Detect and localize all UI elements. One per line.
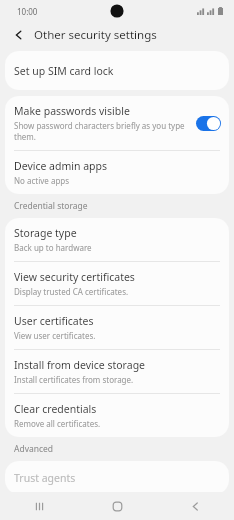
staticText: Set up SIM card lock: [14, 64, 114, 78]
button[interactable]: Make passwords visible: [5, 96, 229, 150]
button[interactable]: Make passwords visible toggle: [196, 116, 221, 131]
button[interactable]: Storage type: [5, 218, 229, 261]
staticText: Install from device storage: [14, 358, 146, 372]
staticText: Credential storage: [14, 200, 88, 212]
staticText: Storage type: [14, 226, 77, 240]
staticText: Show password characters briefly as you …: [14, 120, 190, 142]
staticText: Remove all certificates.: [14, 418, 101, 429]
button[interactable]: Device admin apps: [5, 151, 229, 194]
staticText: Make passwords visible: [14, 104, 130, 118]
staticText: Trust agents: [14, 471, 76, 485]
button[interactable]: View security certificates: [5, 262, 229, 305]
button[interactable]: User certificates: [5, 306, 229, 349]
staticText: Clear credentials: [14, 402, 97, 416]
staticText: Advanced: [14, 443, 54, 455]
staticText: Other security settings: [34, 27, 157, 43]
staticText: View security certificates: [14, 270, 135, 284]
button[interactable]: Recents: [0, 492, 78, 520]
staticText: User certificates: [14, 314, 94, 328]
button[interactable]: Home: [78, 492, 156, 520]
staticText: View user certificates.: [14, 330, 96, 341]
staticText: Back up to hardware: [14, 242, 92, 253]
staticText: Install certificates from storage.: [14, 374, 134, 385]
staticText: 10:00: [17, 6, 38, 17]
button[interactable]: Trust agents: [5, 461, 229, 492]
staticText: No active apps: [14, 175, 70, 186]
button[interactable]: Set up SIM card lock: [5, 51, 229, 90]
button[interactable]: Back: [8, 24, 30, 46]
staticText: Display trusted CA certificates.: [14, 286, 129, 297]
button[interactable]: Clear credentials: [5, 394, 229, 437]
staticText: Device admin apps: [14, 159, 108, 173]
button[interactable]: Back: [156, 492, 234, 520]
button[interactable]: Install from device storage: [5, 350, 229, 393]
